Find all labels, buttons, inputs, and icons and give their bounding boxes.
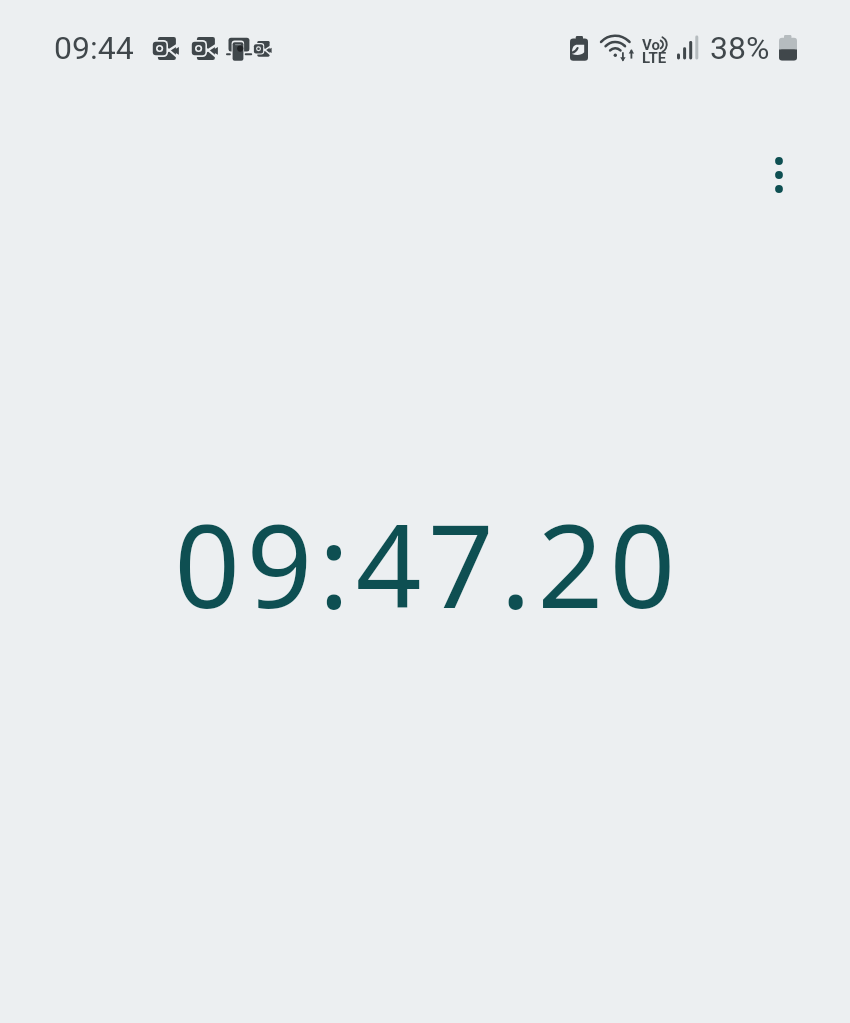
button[interactable]: More options [751, 147, 807, 203]
staticText: 38% [710, 29, 770, 67]
staticText: 09:47.20 [174, 485, 682, 642]
staticText: 09:44 [54, 29, 134, 67]
staticText: LTE [642, 49, 667, 67]
staticText: Vo [642, 36, 660, 54]
